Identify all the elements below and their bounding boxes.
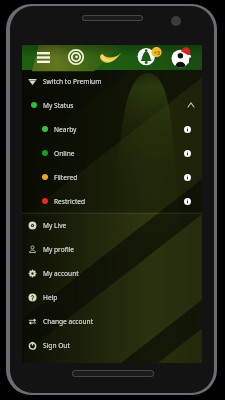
button[interactable]: Info about Online: [184, 150, 191, 157]
button[interactable]: My account: [22, 261, 202, 285]
staticText: My Status: [43, 101, 74, 110]
staticText: Restricted: [54, 197, 86, 206]
staticText: My account: [43, 269, 79, 278]
staticText: My Live: [43, 221, 67, 230]
staticText: Online: [54, 149, 75, 158]
button[interactable]: Notifications: [134, 45, 159, 70]
button[interactable]: Bananas: [97, 51, 123, 65]
button[interactable]: Filtered: [22, 165, 202, 189]
staticText: Change account: [43, 317, 94, 326]
button[interactable]: Info about Nearby: [184, 126, 191, 133]
staticText: Sign Out: [43, 341, 70, 350]
button[interactable]: Switch to Premium: [22, 69, 202, 93]
button[interactable]: Online: [22, 141, 202, 165]
button[interactable]: Help: [22, 285, 202, 309]
button[interactable]: Nearby: [22, 117, 202, 141]
button[interactable]: My Status: [22, 93, 202, 117]
button[interactable]: Profile: [169, 45, 194, 70]
button[interactable]: Open navigation menu: [34, 48, 53, 67]
staticText: My profile: [43, 245, 75, 254]
button[interactable]: Info about Filtered: [184, 174, 191, 181]
staticText: Help: [43, 293, 58, 302]
button[interactable]: Info about Restricted: [184, 198, 191, 205]
button[interactable]: Change account: [22, 309, 202, 333]
button[interactable]: My Live: [22, 213, 202, 237]
staticText: Switch to Premium: [43, 77, 102, 86]
staticText: Filtered: [54, 173, 78, 182]
button[interactable]: My profile: [22, 237, 202, 261]
staticText: +3: [154, 49, 161, 56]
button[interactable]: Discover: [66, 47, 86, 67]
button[interactable]: Sign Out: [22, 333, 202, 357]
staticText: Nearby: [54, 125, 77, 134]
button[interactable]: Restricted: [22, 189, 202, 213]
